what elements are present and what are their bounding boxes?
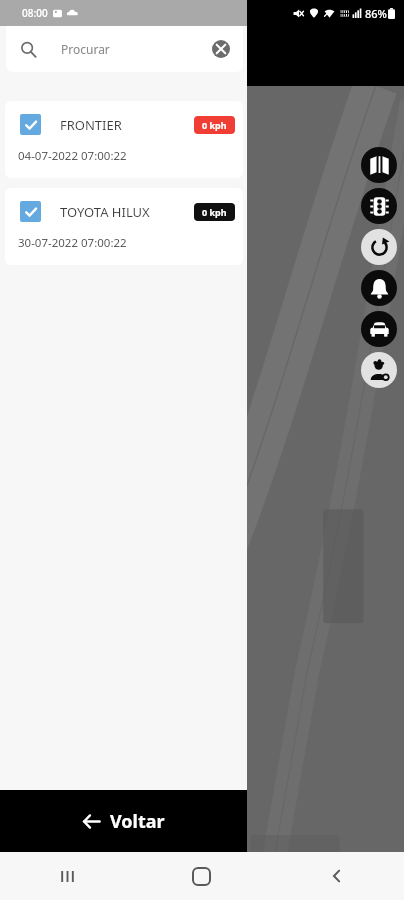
button[interactable]: Recents (0, 852, 134, 900)
staticText: Voltar (110, 809, 165, 834)
button[interactable]: Driver (361, 352, 397, 388)
button[interactable]: Refresh (361, 229, 397, 265)
staticText: TOYOTA HILUX (60, 203, 150, 221)
staticText: 08:00 (22, 6, 48, 20)
button[interactable]: Traffic (361, 188, 397, 224)
staticText: FRONTIER (60, 116, 122, 134)
button[interactable]: Selected (5, 188, 243, 265)
staticText: 04-07-2022 07:00:22 (18, 148, 127, 164)
button[interactable]: Selected (20, 201, 41, 222)
button[interactable]: Selected (20, 114, 41, 135)
staticText: Procurar (61, 41, 110, 57)
staticText: 86% (365, 6, 387, 21)
button[interactable]: Map layers (361, 147, 397, 183)
button[interactable]: Voltar (0, 790, 247, 852)
button[interactable]: Selected (5, 101, 243, 178)
button[interactable]: Back (269, 852, 404, 900)
staticText: 0 kph (202, 206, 227, 218)
button[interactable]: Home (134, 852, 269, 900)
button[interactable]: Vehicles (361, 311, 397, 347)
staticText: 0 kph (202, 119, 227, 131)
button[interactable]: Alerts (361, 270, 397, 306)
button[interactable]: Clear search (207, 35, 235, 63)
button[interactable]: Procurar (6, 26, 243, 72)
staticText: 30-07-2022 07:00:22 (18, 235, 127, 251)
